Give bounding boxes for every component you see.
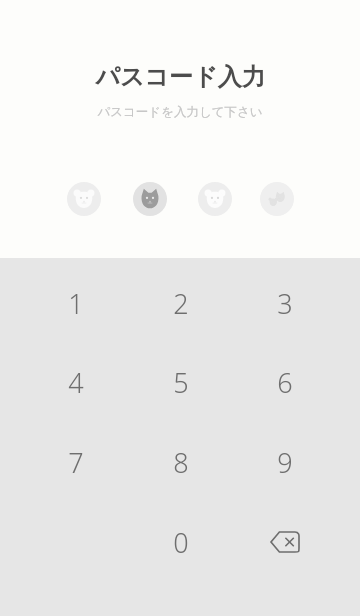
staticText: 5	[173, 364, 189, 401]
button[interactable]: Delete	[237, 505, 333, 579]
button[interactable]: 7	[28, 425, 124, 499]
button[interactable]: Passcode character	[260, 182, 294, 216]
button[interactable]: 2	[133, 266, 229, 340]
staticText: パスコードを入力して下さい	[97, 104, 263, 120]
button[interactable]: 3	[237, 266, 333, 340]
button[interactable]: Passcode character	[133, 182, 167, 216]
button[interactable]: 9	[237, 425, 333, 499]
staticText: 7	[68, 444, 84, 481]
button[interactable]: 4	[28, 345, 124, 419]
staticText: 6	[277, 364, 293, 401]
button[interactable]: Passcode character	[198, 182, 232, 216]
button[interactable]: 6	[237, 345, 333, 419]
staticText: 3	[277, 285, 293, 322]
staticText: 8	[173, 444, 189, 481]
staticText: 4	[68, 364, 84, 401]
staticText: 1	[68, 285, 84, 322]
button[interactable]: 0	[133, 505, 229, 579]
staticText: 0	[173, 524, 189, 561]
button[interactable]: 5	[133, 345, 229, 419]
staticText: パスコード入力	[95, 62, 266, 92]
button[interactable]: 1	[28, 266, 124, 340]
button[interactable]: Passcode character	[67, 182, 101, 216]
staticText: 2	[173, 285, 189, 322]
button[interactable]: 8	[133, 425, 229, 499]
staticText: 9	[277, 444, 293, 481]
